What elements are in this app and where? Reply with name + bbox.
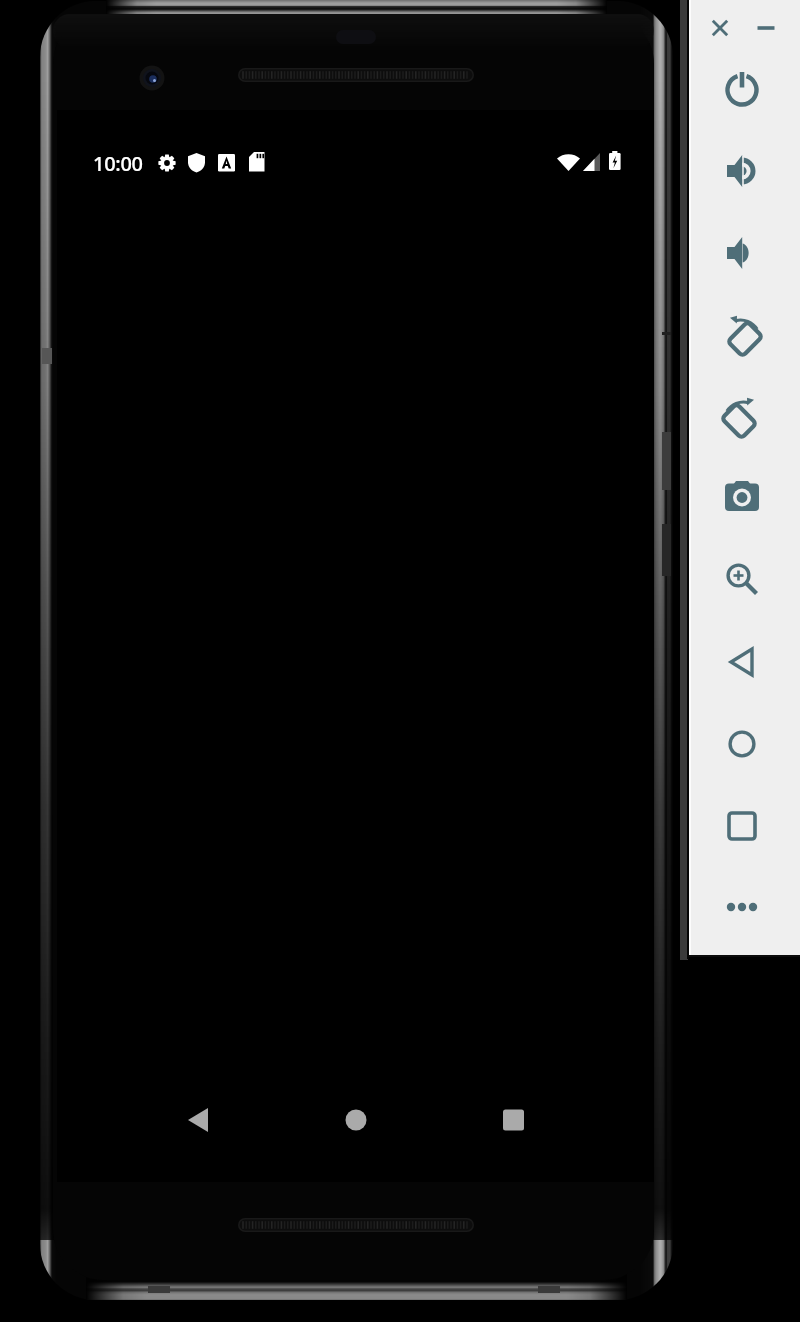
button[interactable]: Close [696,4,744,52]
button[interactable]: Volume up [718,147,766,195]
button[interactable]: Power [718,65,766,113]
button[interactable]: Home [718,720,766,768]
button[interactable]: Zoom [718,555,766,603]
button[interactable]: Rotate right [718,394,766,442]
staticText: 10:00 [93,150,143,177]
button[interactable]: Overview [718,802,766,850]
button[interactable]: Minimize [742,4,790,52]
button[interactable]: Take screenshot [718,473,766,521]
button[interactable]: Volume down [718,229,766,277]
button[interactable]: Rotate left [718,312,766,360]
button[interactable]: More [718,883,766,931]
button[interactable]: Back [718,638,766,686]
